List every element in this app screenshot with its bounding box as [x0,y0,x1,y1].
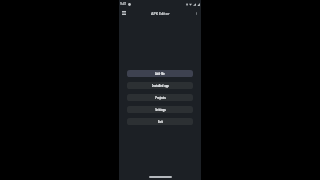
staticText: Add file [155,72,165,76]
staticText: Settings [155,108,166,112]
button[interactable]: More options [192,9,200,17]
staticText: Installed app [152,84,169,88]
staticText: APK Editor [151,11,170,16]
button[interactable]: Exit [127,118,193,125]
staticText: 9:41 [120,2,127,6]
staticText: Projects [155,96,166,100]
staticText: Exit [158,120,163,124]
button[interactable]: Installed app [127,82,193,89]
button[interactable]: Projects [127,94,193,101]
button[interactable]: Add file [127,70,193,77]
button[interactable]: Menu [120,9,128,17]
button[interactable]: Settings [127,106,193,113]
